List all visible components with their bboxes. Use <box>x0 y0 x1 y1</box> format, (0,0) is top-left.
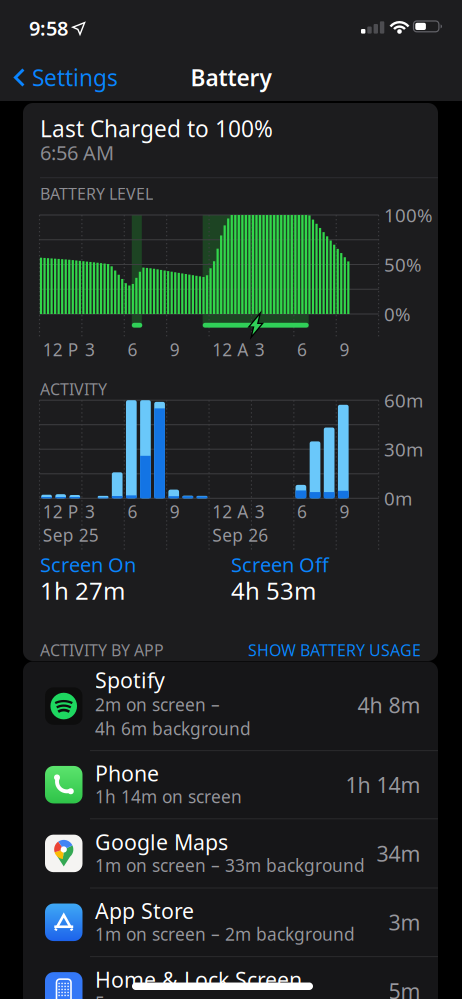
staticText: 3m <box>388 908 420 936</box>
button[interactable]: Google Maps <box>23 819 438 888</box>
staticText: 9:58 <box>29 15 68 41</box>
staticText: 5m on screen <box>95 991 206 999</box>
button[interactable]: App Store <box>23 888 438 957</box>
staticText: Google Maps <box>95 828 228 856</box>
staticText: 3 <box>255 500 265 523</box>
staticText: Battery <box>190 62 271 92</box>
button[interactable]: Back to Settings <box>14 64 118 90</box>
staticText: 1h 14m on screen <box>95 785 242 808</box>
staticText: 9 <box>339 338 349 361</box>
staticText: 4h 8m <box>357 691 420 719</box>
staticText: Phone <box>95 759 159 787</box>
staticText: 0% <box>384 302 411 326</box>
staticText: 0m <box>384 486 412 511</box>
staticText: 3 <box>85 338 95 361</box>
staticText: 12 P <box>43 500 78 523</box>
staticText: 1h 27m <box>40 575 125 606</box>
staticText: 12 A <box>212 500 248 523</box>
staticText: 3 <box>255 338 265 361</box>
staticText: 9 <box>170 338 180 361</box>
staticText: 6 <box>297 500 307 523</box>
staticText: SHOW BATTERY USAGE <box>248 639 421 661</box>
staticText: Sep 25 <box>43 523 99 546</box>
button[interactable]: Spotify <box>23 661 438 751</box>
staticText: 6:56 AM <box>40 139 114 166</box>
staticText: 30m <box>384 437 423 462</box>
button[interactable]: Phone <box>23 751 438 819</box>
staticText: 1m on screen – 33m background <box>95 854 365 877</box>
staticText: 2m on screen – <box>95 693 220 716</box>
staticText: 50% <box>384 252 422 277</box>
staticText: 12 A <box>212 338 248 361</box>
staticText: 6 <box>127 500 137 523</box>
staticText: 1h 14m <box>345 770 420 799</box>
staticText: App Store <box>95 897 194 925</box>
staticText: Spotify <box>95 666 165 694</box>
staticText: 60m <box>384 388 423 413</box>
staticText: 100% <box>384 203 433 227</box>
staticText: Screen On <box>40 551 136 578</box>
button[interactable]: SHOW BATTERY USAGE <box>201 638 421 662</box>
staticText: BATTERY LEVEL <box>40 183 153 204</box>
staticText: Last Charged to 100% <box>40 113 273 143</box>
staticText: 4h 6m background <box>95 717 251 740</box>
button[interactable]: Home & Lock Screen <box>23 957 438 999</box>
staticText: 9 <box>339 500 349 523</box>
staticText: Sep 26 <box>212 523 268 546</box>
staticText: 4h 53m <box>231 575 316 606</box>
staticText: Screen Off <box>231 551 329 578</box>
staticText: 3 <box>85 500 95 523</box>
staticText: 6 <box>127 338 137 361</box>
staticText: Settings <box>32 62 118 92</box>
staticText: ACTIVITY BY APP <box>40 639 164 661</box>
staticText: 6 <box>297 338 307 361</box>
staticText: 12 P <box>43 338 78 361</box>
staticText: 1m on screen – 2m background <box>95 923 355 946</box>
staticText: ACTIVITY <box>40 378 107 400</box>
staticText: 9 <box>170 500 180 523</box>
staticText: 5m <box>388 977 420 999</box>
staticText: 34m <box>376 839 420 867</box>
staticText: Home & Lock Screen <box>95 965 302 993</box>
